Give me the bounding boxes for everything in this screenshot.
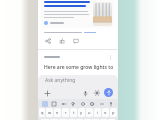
- button[interactable]: e: [54, 108, 61, 117]
- staticText: y: [80, 110, 83, 115]
- button[interactable]: Ask anything: [38, 75, 118, 86]
- staticText: Ask anything: [45, 77, 76, 84]
- button[interactable]: [41, 0, 115, 28]
- staticText: Here are some grow lights to: [44, 64, 114, 71]
- button[interactable]: q: [39, 108, 45, 117]
- button[interactable]: r: [62, 108, 69, 117]
- button[interactable]: Keyboard tool 7: [108, 101, 114, 107]
- staticText: r: [65, 110, 67, 115]
- button[interactable]: Share: [44, 37, 52, 45]
- button[interactable]: Send: [104, 88, 113, 97]
- other: More options: [107, 54, 113, 60]
- staticText: q: [41, 110, 44, 115]
- staticText: t: [73, 110, 75, 115]
- button[interactable]: p: [110, 108, 117, 117]
- button[interactable]: Gemini Live: [93, 89, 101, 97]
- button[interactable]: More options: [38, 50, 118, 60]
- button[interactable]: Keyboard layout: [42, 101, 48, 107]
- button[interactable]: o: [102, 108, 109, 117]
- button[interactable]: Keyboard tool 3: [70, 101, 76, 107]
- button[interactable]: i: [94, 108, 101, 117]
- button[interactable]: Add: [43, 89, 51, 97]
- staticText: w: [48, 110, 52, 115]
- button[interactable]: Voice input: [81, 89, 89, 97]
- button[interactable]: u: [86, 108, 93, 117]
- button[interactable]: t: [70, 108, 77, 117]
- button[interactable]: Edit: [72, 37, 80, 45]
- button[interactable]: Like: [58, 37, 66, 45]
- button[interactable]: Keyboard tool 6: [99, 101, 105, 107]
- staticText: p: [112, 110, 115, 115]
- button[interactable]: Keyboard tool 2: [61, 101, 67, 107]
- button[interactable]: w: [46, 108, 53, 117]
- button[interactable]: Keyboard tool 4: [80, 101, 86, 107]
- staticText: e: [56, 110, 59, 115]
- button[interactable]: Keyboard tool 5: [89, 101, 95, 107]
- staticText: o: [104, 110, 107, 115]
- button[interactable]: Keyboard tool 1: [51, 101, 57, 107]
- staticText: i: [97, 110, 99, 115]
- staticText: u: [88, 110, 91, 115]
- button[interactable]: y: [78, 108, 85, 117]
